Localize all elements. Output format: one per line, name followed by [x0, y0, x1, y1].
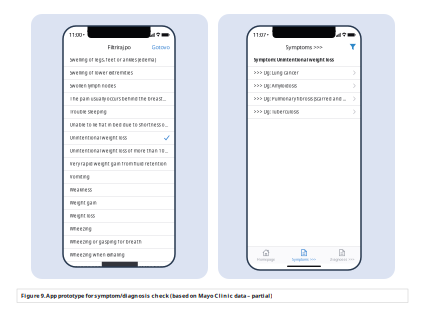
staticText: ▾: [82, 33, 85, 36]
staticText: >>> Dg: Amyloidosis: [254, 83, 297, 89]
staticText: Weight loss: [70, 213, 95, 219]
staticText: Swollen lymph nodes: [70, 83, 116, 89]
button[interactable]: Unintentional weight loss of more than 1…: [63, 144, 175, 157]
staticText: Wheezing or gasping for breath: [70, 239, 142, 245]
staticText: Figure 9.App prototype for symptom/diagn…: [21, 292, 272, 299]
button[interactable]: Filter: [346, 44, 361, 50]
staticText: Unintentional weight loss: [70, 135, 127, 141]
button[interactable]: Weight gain: [63, 196, 175, 209]
staticText: ▾: [266, 33, 269, 36]
staticText: Diagnoses >>>: [329, 257, 354, 262]
staticText: Homepage: [257, 257, 275, 262]
staticText: Symptoms >>>: [292, 257, 316, 262]
staticText: Symptom: Unintentional weight loss: [254, 57, 334, 63]
staticText: Gotovo: [151, 43, 169, 51]
button[interactable]: Wheezing or gasping for breath: [63, 235, 175, 248]
button[interactable]: Diagnoses >>>: [323, 247, 361, 264]
button[interactable]: Swelling of lower extremities: [63, 66, 175, 79]
staticText: 11:07: [253, 31, 266, 38]
staticText: Very rapid weight gain from fluid retent…: [70, 161, 167, 167]
button[interactable]: Unable to lie flat in bed due to shortne…: [63, 118, 175, 131]
button[interactable]: Trouble sleeping: [63, 105, 175, 118]
button[interactable]: Unintentional weight loss: [63, 131, 175, 144]
staticText: Vomiting: [70, 174, 90, 180]
staticText: Weakness: [70, 187, 92, 193]
staticText: Unable to lie flat in bed due to shortne…: [70, 122, 168, 128]
button[interactable]: Very rapid weight gain from fluid retent…: [63, 157, 175, 170]
button[interactable]: Weight loss: [63, 209, 175, 222]
staticText: Symptoms >>>: [285, 43, 322, 51]
button[interactable]: >>> Dg: Pulmonary fibrosis (scarred and …: [247, 92, 361, 105]
button[interactable]: Swelling of legs, feet or ankles (edema): [63, 53, 175, 66]
button[interactable]: Wheezing: [63, 222, 175, 235]
staticText: The pain usually occurs behind the breas…: [70, 96, 168, 102]
staticText: Widening and: [70, 265, 102, 271]
button[interactable]: Swollen lymph nodes: [63, 79, 175, 92]
staticText: Trouble sleeping: [70, 109, 107, 115]
button[interactable]: Homepage: [247, 247, 285, 264]
staticText: >>> Dg: Pulmonary fibrosis (scarred and …: [254, 96, 346, 102]
staticText: Filtriraj po: [107, 43, 130, 51]
button[interactable]: Widening and: [63, 261, 175, 274]
button[interactable]: The pain usually occurs behind the breas…: [63, 92, 175, 105]
button[interactable]: >>> Dg: Lung cancer: [247, 66, 361, 79]
staticText: of the finge...: [138, 265, 169, 271]
staticText: Wheezing when exhaling: [70, 252, 125, 258]
staticText: >>> Dg: Lung cancer: [254, 70, 299, 76]
staticText: rounding of the ti: [102, 262, 138, 274]
button[interactable]: >>> Dg: Tuberculosis: [247, 105, 361, 118]
button[interactable]: Weakness: [63, 183, 175, 196]
staticText: Wheezing: [70, 226, 92, 232]
button[interactable]: Vomiting: [63, 170, 175, 183]
staticText: Unintentional weight loss of more than 1…: [70, 148, 168, 154]
staticText: 11:00: [69, 31, 82, 38]
button[interactable]: Gotovo: [147, 43, 175, 51]
button[interactable]: Wheezing when exhaling: [63, 248, 175, 261]
staticText: Swelling of lower extremities: [70, 70, 133, 76]
button[interactable]: >>> Dg: Amyloidosis: [247, 79, 361, 92]
staticText: >>> Dg: Tuberculosis: [254, 109, 299, 115]
staticText: Weight gain: [70, 200, 97, 206]
staticText: Swelling of legs, feet or ankles (edema): [70, 57, 156, 63]
button[interactable]: Symptoms >>>: [285, 247, 323, 264]
